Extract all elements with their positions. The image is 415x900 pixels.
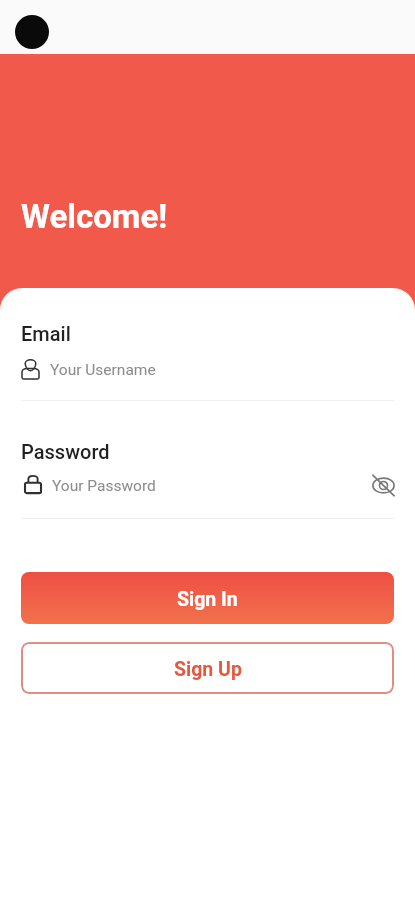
button[interactable]: Show password bbox=[372, 472, 395, 498]
other: Camera bbox=[15, 15, 49, 49]
staticText: Welcome! bbox=[21, 197, 168, 236]
button[interactable]: Your Password bbox=[21, 471, 371, 493]
staticText: Your Username bbox=[50, 361, 156, 379]
staticText: Email bbox=[21, 322, 71, 345]
staticText: Password bbox=[21, 440, 110, 463]
button[interactable]: Sign In bbox=[21, 572, 394, 624]
staticText: Sign In bbox=[177, 588, 238, 611]
button[interactable]: Your Username bbox=[21, 354, 394, 382]
staticText: Sign Up bbox=[174, 658, 242, 681]
staticText: Your Password bbox=[52, 477, 156, 495]
button[interactable]: Sign Up bbox=[21, 642, 394, 694]
